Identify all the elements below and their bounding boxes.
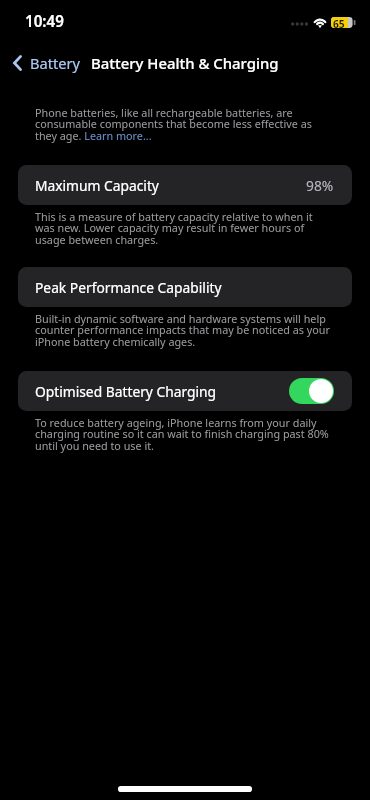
staticText: Phone batteries, like all rechargeable b… bbox=[35, 105, 334, 144]
staticText: 65 bbox=[333, 17, 345, 31]
staticText: 10:49 bbox=[25, 11, 64, 32]
button[interactable]: Maximum Capacity bbox=[18, 165, 352, 205]
button[interactable]: Battery bbox=[0, 45, 90, 81]
staticText: Maximum Capacity bbox=[35, 176, 159, 195]
staticText: Built-in dynamic software and hardware s… bbox=[35, 311, 334, 350]
button[interactable]: Optimised Battery Charging toggle bbox=[289, 378, 334, 404]
button[interactable]: Optimised Battery Charging bbox=[18, 371, 352, 411]
staticText: Peak Performance Capability bbox=[35, 278, 222, 297]
button[interactable]: Peak Performance Capability bbox=[18, 267, 352, 307]
staticText: Optimised Battery Charging bbox=[35, 382, 217, 401]
staticText: Battery Health & Charging bbox=[91, 53, 279, 73]
staticText: To reduce battery ageing, iPhone learns … bbox=[35, 415, 334, 454]
staticText: Battery bbox=[30, 53, 80, 73]
staticText: This is a measure of battery capacity re… bbox=[35, 209, 334, 248]
staticText: 98% bbox=[306, 176, 334, 195]
